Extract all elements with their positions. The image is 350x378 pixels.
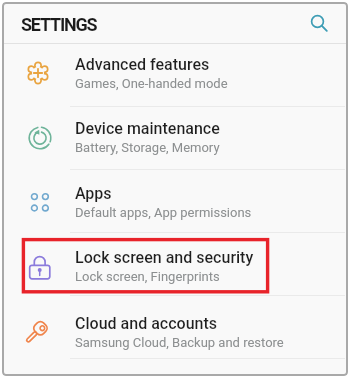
- staticText: Battery, Storage, Memory: [75, 140, 220, 155]
- staticText: Lock screen and security: [75, 248, 254, 267]
- button[interactable]: Device maintenance: [2, 107, 348, 170]
- button[interactable]: Apps: [2, 170, 348, 233]
- button[interactable]: Advanced features: [2, 44, 348, 107]
- staticText: Apps: [75, 184, 112, 203]
- staticText: Cloud and accounts: [75, 314, 218, 333]
- button[interactable]: Lock screen and security: [2, 233, 348, 296]
- staticText: Lock screen, Fingerprints: [75, 269, 220, 284]
- staticText: SETTINGS: [21, 14, 97, 35]
- staticText: Default apps, App permissions: [75, 205, 252, 220]
- staticText: Games, One-handed mode: [75, 76, 228, 91]
- button[interactable]: [304, 8, 334, 38]
- staticText: Samsung Cloud, Backup and restore: [75, 335, 284, 350]
- staticText: Device maintenance: [75, 119, 220, 138]
- button[interactable]: Cloud and accounts: [2, 296, 348, 359]
- staticText: Advanced features: [75, 55, 210, 74]
